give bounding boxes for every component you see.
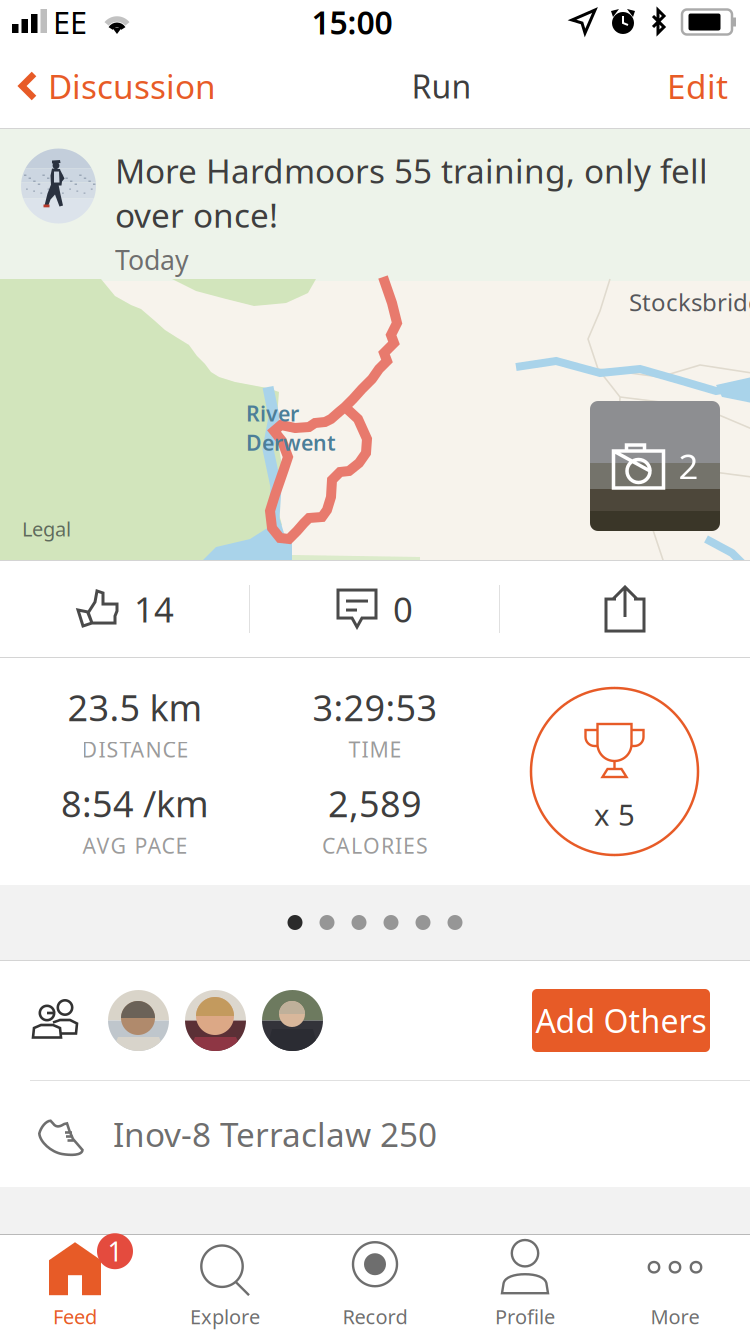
staticText: Run <box>411 65 471 107</box>
button[interactable]: Achievements <box>531 688 698 855</box>
button[interactable]: Photos <box>590 401 720 531</box>
staticText: CALORIES <box>322 831 428 860</box>
staticText: 1 <box>107 1233 122 1269</box>
staticText: Discussion <box>48 64 216 108</box>
button[interactable]: Explore <box>150 1235 300 1334</box>
staticText: 2 <box>678 443 698 489</box>
staticText: x 5 <box>594 795 635 834</box>
staticText: 15:00 <box>311 1 392 43</box>
button[interactable]: More <box>600 1235 750 1334</box>
staticText: Legal <box>22 515 71 542</box>
staticText: 3:29:53 <box>312 683 437 731</box>
staticText: 0 <box>393 586 413 632</box>
staticText: 14 <box>134 586 174 632</box>
button[interactable]: Inov-8 Terraclaw 250 <box>0 1081 750 1187</box>
staticText: Add Others <box>535 999 706 1042</box>
staticText: Profile <box>495 1303 555 1330</box>
button[interactable]: Record <box>300 1235 450 1334</box>
button[interactable]: Edit <box>655 44 750 128</box>
staticText: 2,589 <box>328 779 422 827</box>
staticText: TIME <box>348 735 401 763</box>
button[interactable]: Share <box>500 561 750 657</box>
staticText: More Hardmoors 55 training, only fell ov… <box>115 148 708 237</box>
button[interactable]: Add Others <box>532 989 710 1052</box>
button[interactable]: 0 <box>250 561 499 657</box>
button[interactable]: Profile <box>450 1235 600 1334</box>
button[interactable]: 14 <box>0 561 249 657</box>
staticText: Feed <box>53 1303 97 1330</box>
staticText: DISTANCE <box>81 735 188 763</box>
staticText: Edit <box>667 64 728 108</box>
staticText: More <box>650 1303 699 1330</box>
staticText: Today <box>115 242 189 277</box>
staticText: AVG PACE <box>82 831 187 860</box>
staticText: Explore <box>190 1303 260 1330</box>
button[interactable]: Discussion <box>0 44 228 128</box>
staticText: 8:54 /km <box>61 779 209 827</box>
staticText: Stocksbridge <box>629 286 750 318</box>
staticText: EE <box>53 2 87 42</box>
staticText: Inov-8 Terraclaw 250 <box>113 1112 437 1156</box>
staticText: River <box>246 399 299 427</box>
staticText: Record <box>342 1303 407 1330</box>
staticText: Derwent <box>246 428 336 457</box>
button[interactable]: 1 <box>0 1235 150 1334</box>
staticText: 23.5 km <box>67 683 202 731</box>
